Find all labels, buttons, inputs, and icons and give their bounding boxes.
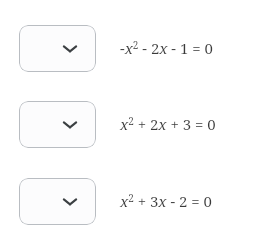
button[interactable]: Select an answer [19,178,96,225]
button[interactable]: Select an answer [19,25,96,72]
button[interactable]: Select an answer [19,101,96,148]
staticText: x2 + 2x + 3 = 0 [120,114,216,135]
staticText: x2 + 3x - 2 = 0 [120,191,212,212]
staticText: -x2 - 2x - 1 = 0 [120,38,213,59]
